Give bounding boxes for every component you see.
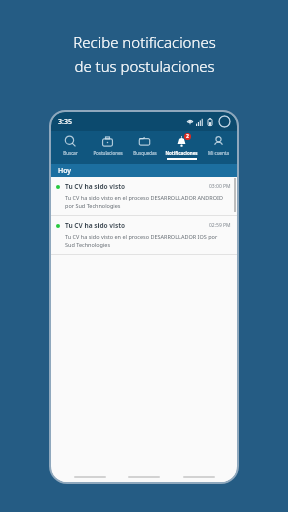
staticText: Tu CV ha sido visto en el proceso DESARR… <box>65 233 227 249</box>
staticText: 02:59 PM <box>209 222 231 229</box>
button[interactable]: Busquedas <box>126 131 163 164</box>
staticText: Recibe notificaciones <box>73 32 216 52</box>
staticText: Tu CV ha sido visto en el proceso DESARR… <box>65 194 227 210</box>
staticText: de tus postulaciones <box>74 56 215 76</box>
staticText: Busquedas <box>133 150 157 156</box>
staticText: Buscar <box>63 150 78 156</box>
staticText: Hoy <box>58 166 72 176</box>
staticText: Tu CV ha sido visto <box>65 221 209 230</box>
button[interactable]: Mi cuenta <box>200 131 237 164</box>
staticText: 3:35 <box>58 117 72 127</box>
staticText: Mi cuenta <box>208 150 229 156</box>
button[interactable]: Postulaciones <box>89 131 126 164</box>
staticText: 2 <box>186 133 189 140</box>
button[interactable]: Tu CV ha sido visto <box>51 177 237 215</box>
staticText: Notificaciones <box>165 150 198 156</box>
button[interactable]: Tu CV ha sido visto <box>51 216 237 254</box>
staticText: Postulaciones <box>93 150 123 156</box>
staticText: Tu CV ha sido visto <box>65 182 209 191</box>
button[interactable]: 2 <box>163 131 200 164</box>
button[interactable]: Buscar <box>51 131 89 164</box>
staticText: 03:00 PM <box>209 183 231 190</box>
